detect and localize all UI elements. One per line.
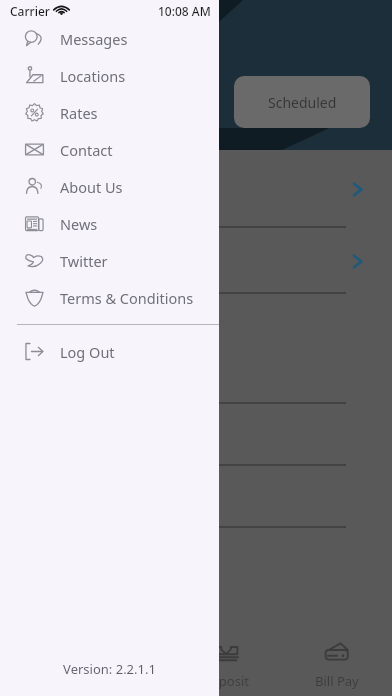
staticText: Deposit: [202, 672, 249, 690]
button[interactable]: Log Out: [0, 333, 219, 370]
staticText: Version: 2.2.1.1: [63, 660, 156, 678]
staticText: About Us: [60, 177, 123, 197]
staticText: Terms & Conditions: [60, 288, 194, 308]
button[interactable]: Contact: [0, 131, 219, 168]
staticText: Twitter: [60, 251, 108, 271]
staticText: Log Out: [60, 342, 115, 362]
button[interactable]: About Us: [0, 168, 219, 205]
button[interactable]: Open detail: [0, 228, 392, 294]
button[interactable]: [0, 466, 392, 528]
button[interactable]: Locations: [0, 57, 219, 94]
staticText: Bill Pay: [315, 672, 359, 690]
staticText: Carrier: [10, 3, 50, 19]
button[interactable]: [0, 404, 392, 466]
button[interactable]: News: [0, 205, 219, 242]
button[interactable]: Rates: [0, 94, 219, 131]
button[interactable]: [0, 294, 392, 404]
other: Open detail: [349, 253, 366, 270]
staticText: Scheduled: [268, 93, 337, 112]
button[interactable]: Messages: [0, 20, 219, 57]
staticText: 10:08 AM: [158, 3, 211, 19]
button[interactable]: Open detail: [0, 150, 392, 228]
staticText: News: [60, 214, 98, 234]
button[interactable]: Twitter: [0, 242, 219, 279]
button[interactable]: Deposit: [170, 638, 281, 690]
staticText: Locations: [60, 66, 126, 86]
staticText: Contact: [60, 140, 113, 160]
button[interactable]: Bill Pay: [281, 638, 392, 690]
other: Open detail: [349, 181, 366, 198]
button[interactable]: Terms & Conditions: [0, 279, 219, 316]
staticText: Rates: [60, 103, 98, 123]
button[interactable]: Scheduled: [234, 76, 370, 128]
staticText: Messages: [60, 29, 128, 49]
